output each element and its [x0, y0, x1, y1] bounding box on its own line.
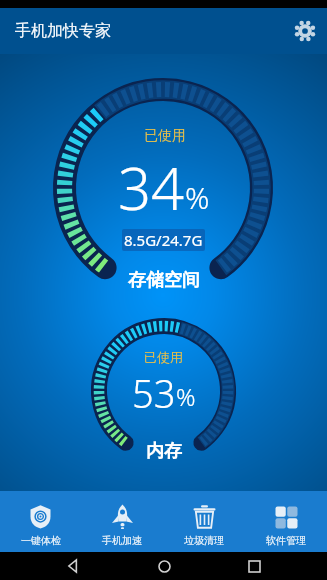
staticText: 已使用 — [144, 349, 183, 365]
staticText: 内存 — [146, 440, 182, 463]
button[interactable]: 手机加速 — [81, 497, 163, 547]
button[interactable]: 软件管理 — [245, 497, 327, 547]
staticText: 软件管理 — [266, 534, 306, 547]
staticText: 已使用 — [144, 127, 186, 145]
staticText: 手机加快专家 — [15, 21, 111, 41]
button[interactable]: Back — [56, 552, 90, 580]
button[interactable]: Recents — [237, 552, 271, 580]
staticText: 一键体检 — [21, 534, 61, 547]
staticText: 8.5G/24.7G — [124, 230, 203, 250]
button[interactable]: Settings — [289, 15, 321, 47]
staticText: 垃圾清理 — [184, 534, 224, 547]
staticText: 53 — [132, 367, 176, 419]
staticText: 存储空间 — [128, 269, 200, 292]
staticText: % — [176, 380, 196, 413]
staticText: 手机加速 — [102, 534, 142, 547]
staticText: 34 — [118, 148, 185, 227]
button[interactable]: 一键体检 — [0, 497, 81, 547]
button[interactable]: 垃圾清理 — [163, 497, 245, 547]
button[interactable]: Home — [147, 552, 181, 580]
staticText: % — [185, 177, 210, 218]
